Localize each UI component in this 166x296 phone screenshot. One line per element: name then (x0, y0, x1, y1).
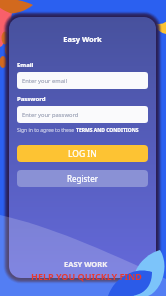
staticText: HELP YOU QUICKLY FIND (31, 270, 142, 282)
staticText: Password (17, 95, 46, 103)
staticText: Easy Work (17, 34, 148, 44)
staticText: LOG IN (68, 148, 97, 160)
staticText: Email (17, 61, 34, 69)
staticText: EASY WORK (64, 259, 108, 269)
button[interactable]: Enter your password (17, 106, 148, 123)
staticText: Enter your password (22, 111, 79, 119)
staticText: Enter your email (22, 77, 67, 85)
staticText: Sign in to agree to these (17, 127, 76, 134)
button[interactable]: Enter your email (17, 72, 148, 89)
staticText: TERMS AND CONDITIONS (76, 127, 139, 134)
staticText: Register (67, 173, 99, 184)
button[interactable]: Register (17, 170, 148, 187)
button[interactable]: LOG IN (17, 145, 148, 162)
